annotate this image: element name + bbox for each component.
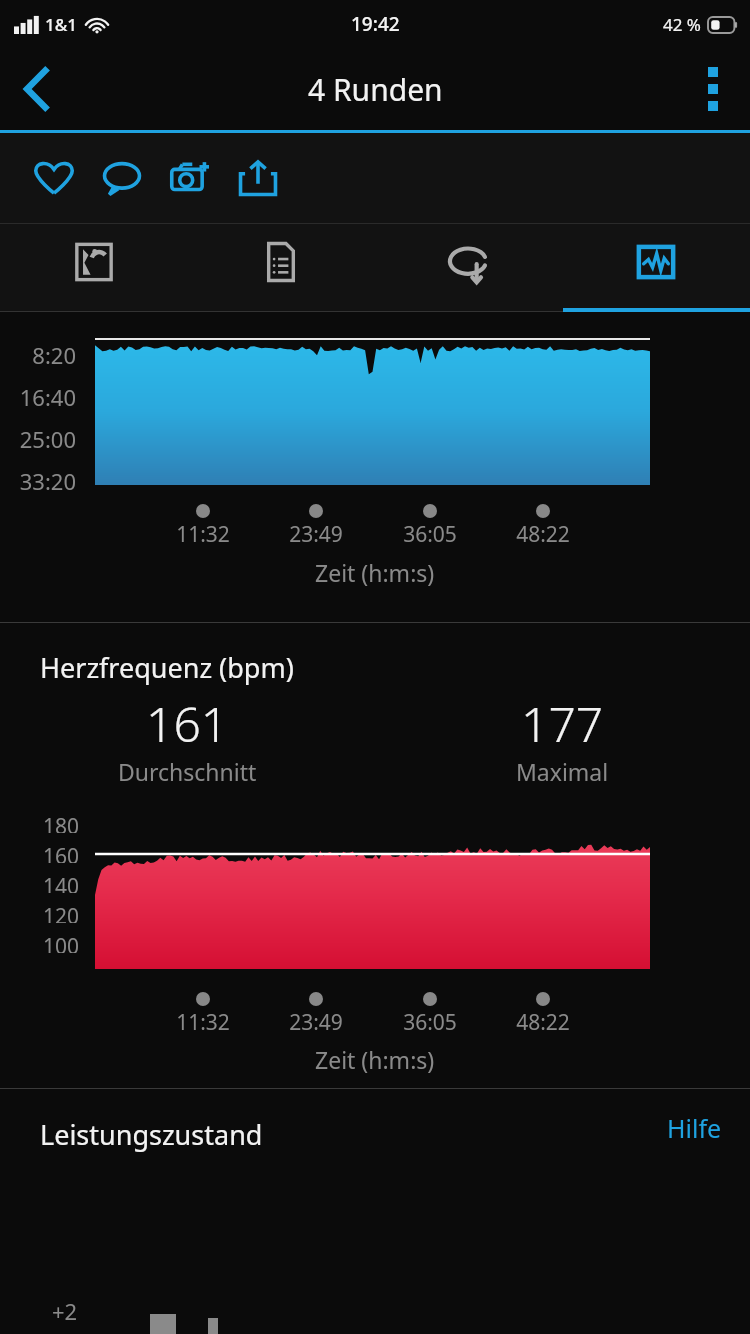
staticText: 19:42 bbox=[351, 11, 400, 37]
staticText: 180 bbox=[43, 812, 80, 833]
staticText: 48:22 bbox=[507, 520, 579, 549]
staticText: 42 % bbox=[663, 13, 701, 36]
staticText: Zeit (h:m:s) bbox=[315, 1044, 435, 1075]
button[interactable]: Hilfe bbox=[667, 1111, 722, 1145]
button[interactable]: Charts bbox=[562, 224, 750, 312]
staticText: 48:22 bbox=[507, 1008, 579, 1037]
staticText: 23:49 bbox=[280, 1008, 352, 1037]
staticText: 140 bbox=[43, 872, 80, 893]
staticText: 161 bbox=[146, 691, 229, 756]
staticText: 8:20 bbox=[32, 340, 76, 370]
staticText: +2 bbox=[52, 1296, 78, 1326]
staticText: 1&1 bbox=[45, 13, 77, 36]
button[interactable]: Laps bbox=[374, 224, 562, 312]
staticText: Leistungszustand bbox=[40, 1116, 263, 1153]
staticText: 11:32 bbox=[167, 520, 239, 549]
staticText: 25:00 bbox=[19, 424, 76, 454]
button[interactable]: More options bbox=[676, 48, 750, 130]
staticText: 16:40 bbox=[19, 382, 76, 412]
button[interactable]: Leistungszustand bbox=[0, 1089, 750, 1179]
button[interactable]: Like bbox=[20, 140, 88, 216]
staticText: 11:32 bbox=[167, 1008, 239, 1037]
staticText: 160 bbox=[43, 842, 80, 863]
button[interactable]: Add photo bbox=[156, 140, 224, 216]
staticText: 4 Runden bbox=[308, 69, 443, 110]
staticText: 120 bbox=[43, 902, 80, 923]
staticText: Durchschnitt bbox=[118, 756, 257, 787]
staticText: Maximal bbox=[516, 756, 609, 787]
button[interactable]: Comment bbox=[88, 140, 156, 216]
staticText: 23:49 bbox=[280, 520, 352, 549]
staticText: 36:05 bbox=[394, 1008, 466, 1037]
staticText: 177 bbox=[521, 691, 604, 756]
staticText: 100 bbox=[43, 932, 80, 953]
staticText: Zeit (h:m:s) bbox=[315, 557, 435, 588]
staticText: 36:05 bbox=[394, 520, 466, 549]
button[interactable]: Share bbox=[224, 140, 292, 216]
staticText: Hilfe bbox=[667, 1111, 722, 1145]
button[interactable]: Details bbox=[187, 224, 374, 312]
staticText: Herzfrequenz (bpm) bbox=[40, 649, 294, 686]
button[interactable]: Map bbox=[0, 224, 187, 312]
staticText: 33:20 bbox=[19, 466, 76, 496]
button[interactable]: Back bbox=[0, 48, 74, 130]
